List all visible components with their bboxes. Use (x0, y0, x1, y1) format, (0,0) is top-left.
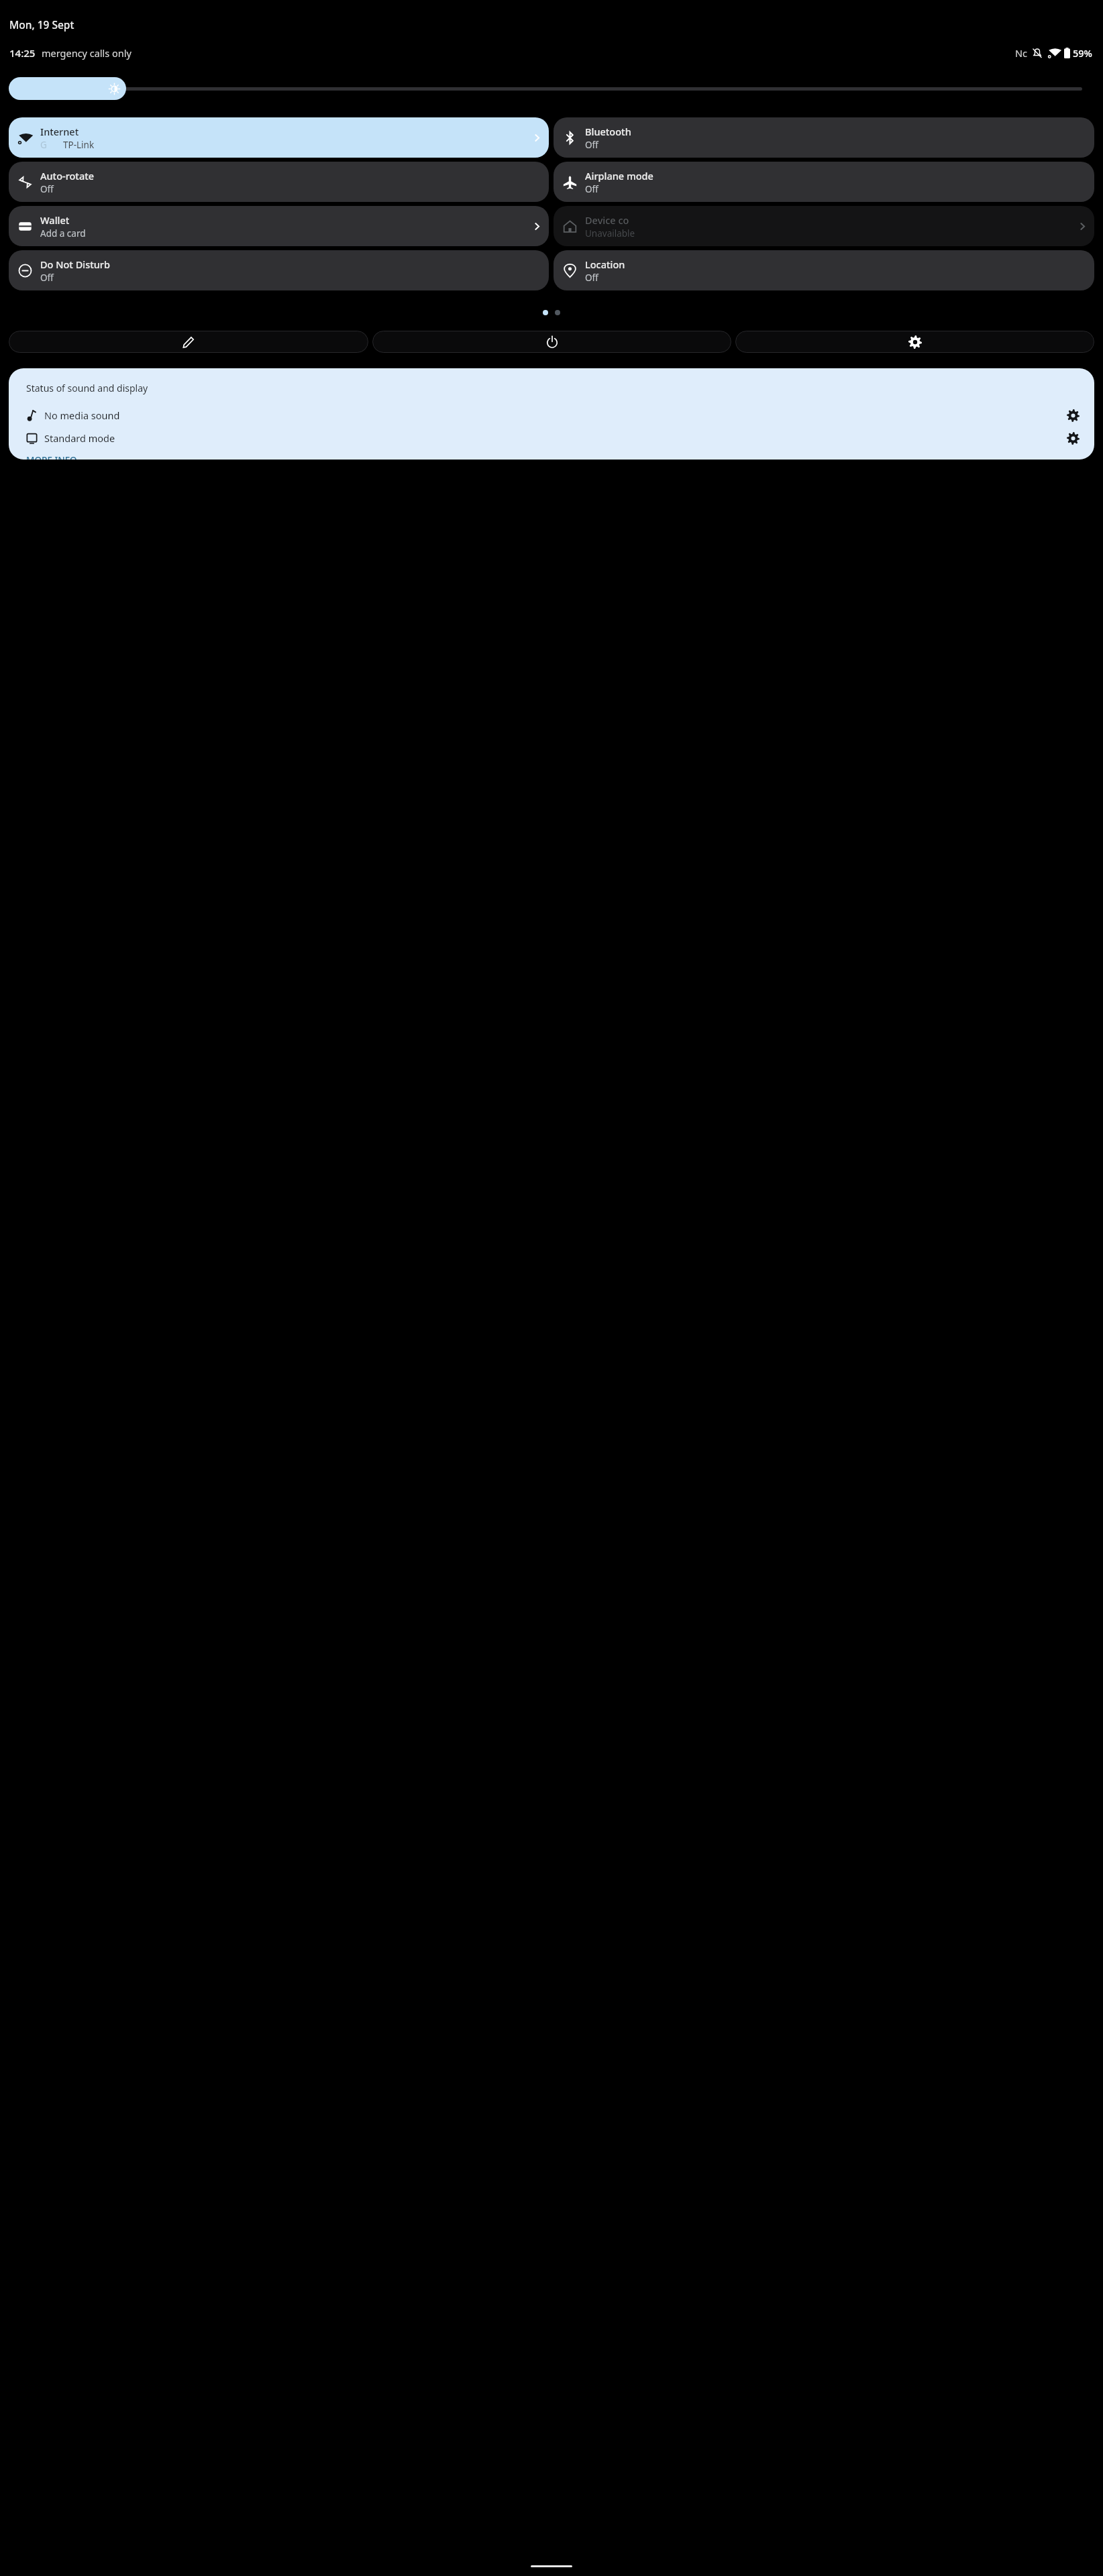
staticText: 59% (1073, 46, 1092, 60)
staticText: Internet (40, 125, 79, 138)
button[interactable]: Airplane mode (554, 162, 1094, 202)
staticText: Off (585, 139, 598, 151)
staticText: Wallet (40, 213, 70, 227)
staticText: Location (585, 258, 625, 271)
button[interactable]: Wallet (9, 206, 549, 246)
staticText: Do Not Disturb (40, 258, 110, 271)
button[interactable]: Bluetooth (554, 117, 1094, 158)
button[interactable]: Do Not Disturb (9, 250, 549, 290)
button[interactable]: Power (372, 331, 731, 353)
staticText: Mon, 19 Sept (9, 17, 74, 32)
staticText: Bluetooth (585, 125, 631, 138)
button[interactable]: Location (554, 250, 1094, 290)
staticText: 14:25 (9, 46, 36, 60)
staticText: No media sound (44, 409, 120, 422)
button[interactable]: Auto-rotate (9, 162, 549, 202)
button[interactable]: Internet (9, 117, 549, 158)
staticText: MORE INFO (26, 454, 77, 460)
staticText: Off (585, 272, 598, 284)
staticText: Off (585, 183, 598, 195)
button[interactable]: Settings (735, 331, 1094, 353)
staticText: Airplane mode (585, 169, 653, 182)
staticText: Standard mode (44, 431, 115, 445)
button[interactable]: MORE INFO (26, 454, 77, 460)
button[interactable]: Device co (554, 206, 1094, 246)
button[interactable]: Standard mode settings (1065, 430, 1081, 446)
staticText: mergency calls only (42, 46, 132, 60)
staticText: Device co (585, 213, 629, 227)
button[interactable]: Edit (9, 331, 368, 353)
staticText: Nc (1015, 46, 1027, 60)
staticText: Status of sound and display (26, 382, 148, 394)
button[interactable]: No media sound settings (1065, 407, 1081, 423)
button[interactable]: Brightness (9, 77, 1094, 100)
button[interactable]: Status of sound and display (9, 368, 1094, 460)
staticText: Unavailable (585, 227, 635, 239)
staticText: G (40, 139, 47, 151)
staticText: Off (40, 183, 54, 195)
staticText: Off (40, 272, 54, 284)
staticText: Add a card (40, 227, 86, 239)
staticText: TP-Link (63, 139, 95, 151)
staticText: Auto-rotate (40, 169, 95, 182)
